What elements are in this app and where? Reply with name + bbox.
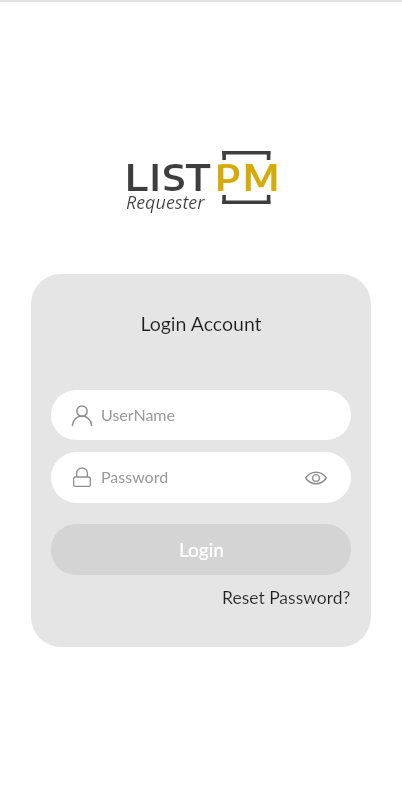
staticText: Login Account: [31, 312, 371, 335]
staticText: Login: [179, 538, 224, 561]
staticText: UserName: [101, 405, 175, 424]
button[interactable]: Reset Password?: [222, 587, 351, 608]
button[interactable]: Password: [51, 452, 351, 503]
staticText: PM: [215, 154, 282, 199]
button[interactable]: Login: [51, 524, 351, 575]
staticText: LIST: [125, 154, 213, 199]
button[interactable]: UserName: [51, 390, 351, 440]
staticText: Password: [101, 467, 169, 486]
button[interactable]: Show password: [298, 452, 334, 503]
staticText: Requester: [126, 190, 205, 215]
